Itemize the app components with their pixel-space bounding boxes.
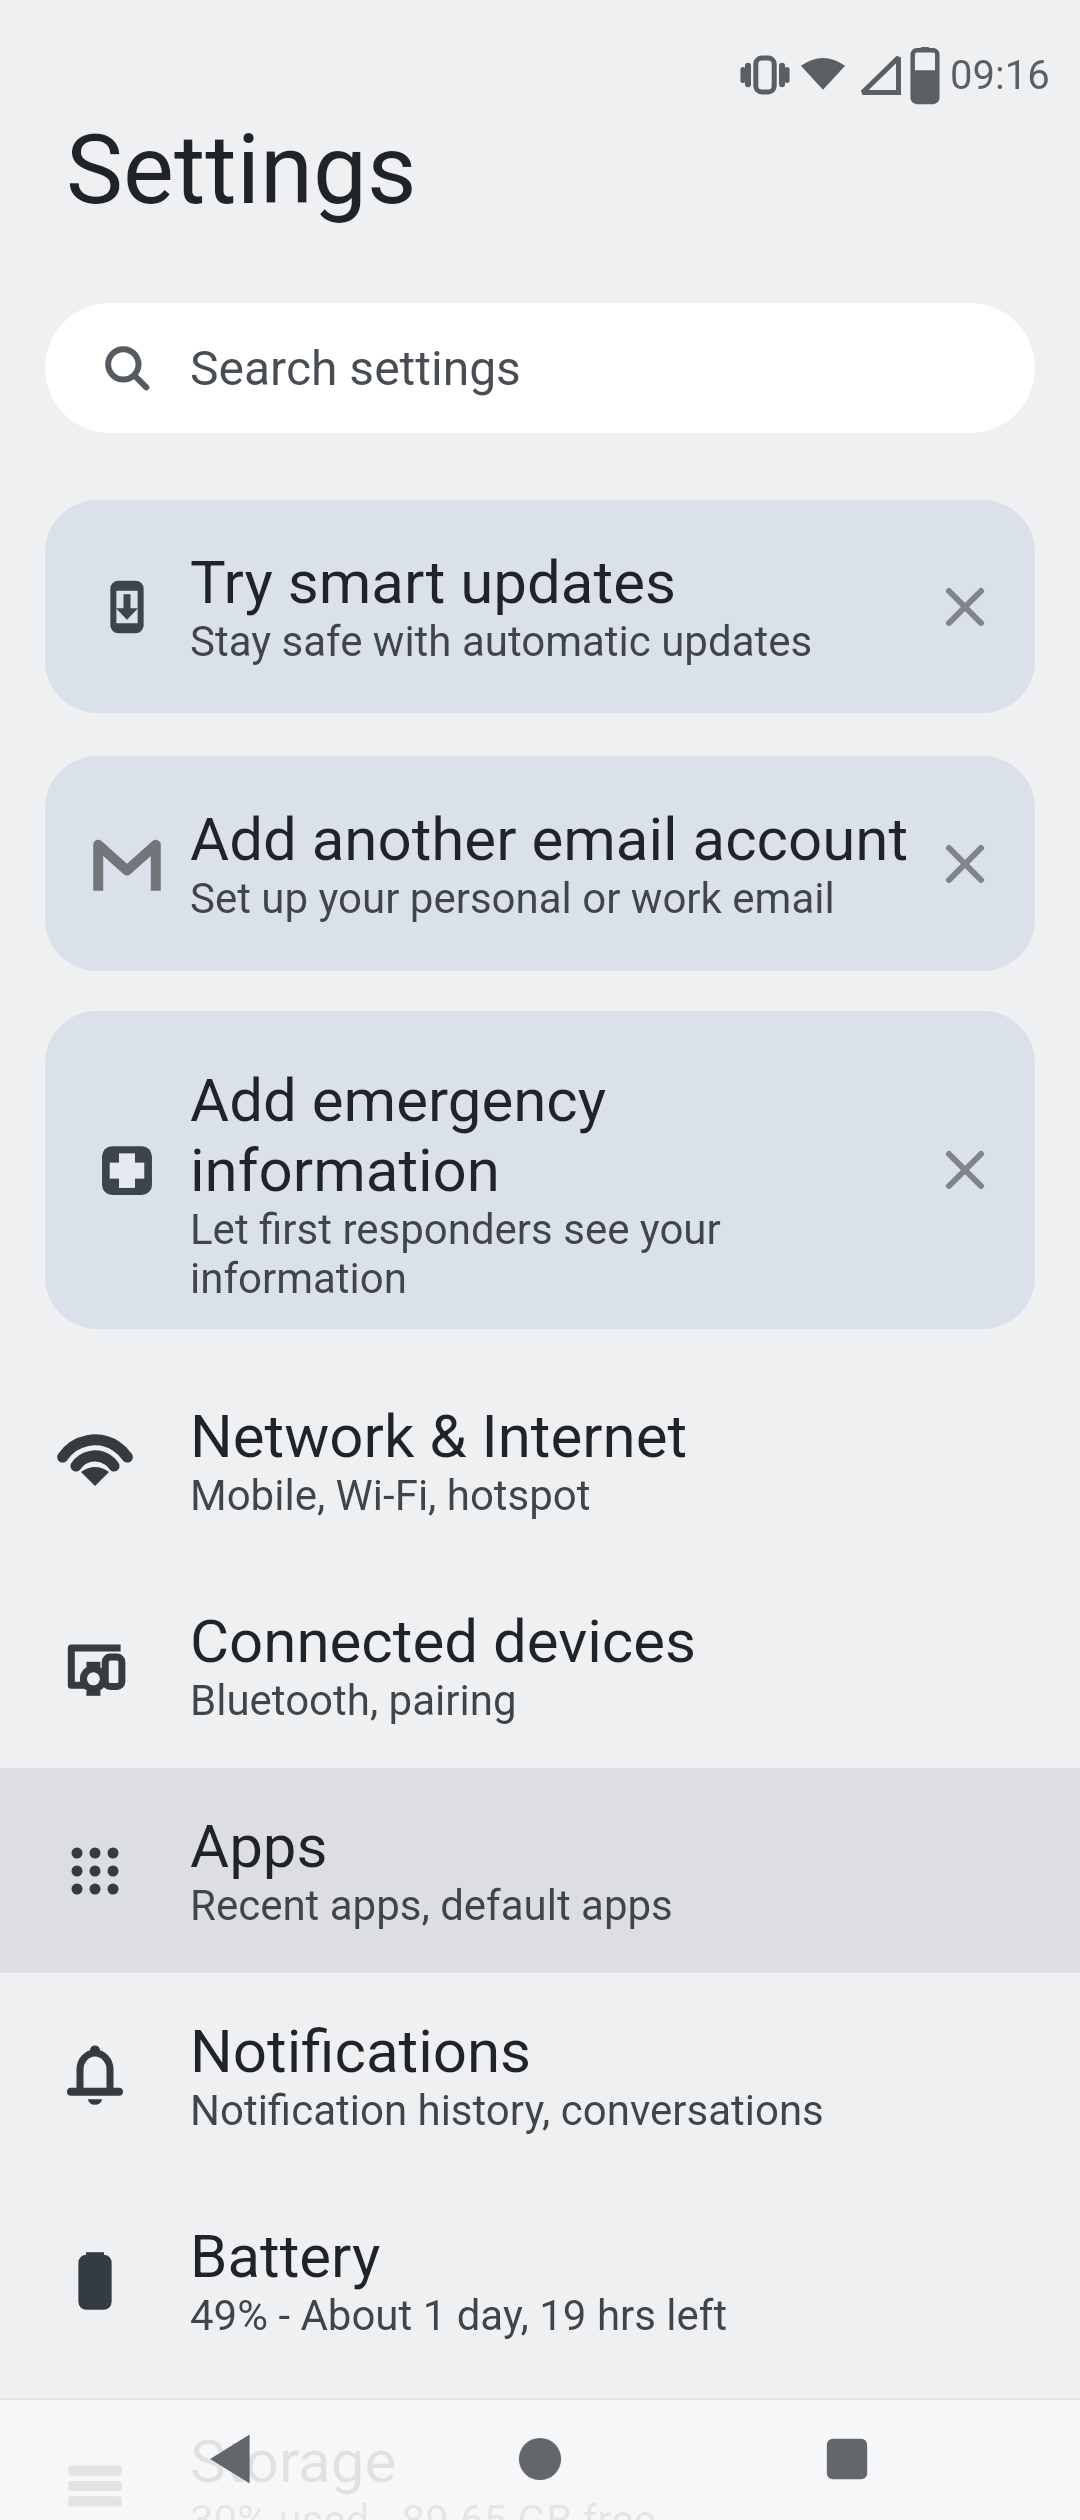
staticText: Add emergency [190, 1065, 607, 1135]
button[interactable]: Try smart updates [45, 500, 1035, 713]
button[interactable]: Connected devices [0, 1563, 1080, 1768]
staticText: Recent apps, default apps [190, 1881, 673, 1930]
staticText: Bluetooth, pairing [190, 1676, 517, 1725]
button[interactable]: Add another email account [45, 756, 1035, 971]
staticText: Add another email account [190, 804, 909, 874]
button[interactable]: Search settings [45, 303, 1035, 433]
staticText: Stay safe with automatic updates [190, 617, 813, 666]
button[interactable] [80, 2398, 386, 2520]
button[interactable]: Apps [0, 1768, 1080, 1973]
button[interactable] [386, 2398, 693, 2520]
staticText: Try smart updates [190, 547, 676, 617]
staticText: 09:16 [950, 52, 1050, 99]
staticText: Notification history, conversations [190, 2086, 824, 2135]
staticText: Notifications [190, 2016, 532, 2086]
staticText: Battery [190, 2221, 381, 2291]
button[interactable]: Battery [0, 2178, 1080, 2383]
staticText: 49% - About 1 day, 19 hrs left [190, 2291, 728, 2340]
button[interactable]: Add emergency [45, 1011, 1035, 1329]
staticText: Let first responders see your [190, 1205, 721, 1254]
staticText: Settings [66, 114, 417, 227]
button[interactable]: Storage [0, 2383, 1080, 2520]
staticText: Network & Internet [190, 1401, 688, 1471]
button[interactable] [915, 1120, 1015, 1220]
button[interactable] [915, 814, 1015, 914]
staticText: information [190, 1135, 500, 1205]
staticText: information [190, 1254, 407, 1303]
button[interactable] [693, 2398, 1000, 2520]
staticText: Set up your personal or work email [190, 874, 835, 923]
staticText: Mobile, Wi-Fi, hotspot [190, 1471, 591, 1520]
button[interactable]: Notifications [0, 1973, 1080, 2178]
staticText: Connected devices [190, 1606, 697, 1676]
staticText: 30% used - 89.65 GB free [190, 2496, 656, 2520]
button[interactable] [915, 557, 1015, 657]
staticText: Storage [190, 2426, 397, 2496]
staticText: Search settings [190, 340, 521, 396]
staticText: Apps [190, 1811, 328, 1881]
button[interactable]: Network & Internet [0, 1358, 1080, 1563]
